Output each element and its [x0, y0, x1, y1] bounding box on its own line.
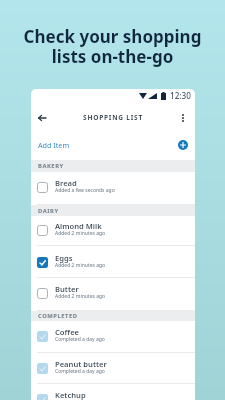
staticText: DAIRY [38, 207, 59, 215]
staticText: COMPLETED [38, 312, 78, 320]
staticText: Check your shopping lists on-the-go [0, 25, 225, 68]
staticText: Coffee [55, 327, 80, 337]
staticText: Added 2 minutes ago [55, 262, 106, 269]
button[interactable]: Bread [31, 172, 195, 205]
staticText: SHOPPING LIST [83, 113, 143, 122]
staticText: Completed a day ago [55, 368, 105, 375]
staticText: Added 2 minutes ago [55, 293, 106, 300]
button[interactable]: Peanut butter [31, 353, 195, 384]
button[interactable]: Almond Milk [31, 216, 195, 246]
staticText: Added a few seconds ago [55, 187, 115, 194]
staticText: Butter [55, 284, 79, 294]
staticText: 12:30 [170, 90, 191, 101]
button[interactable]: Coffee [31, 321, 195, 353]
staticText: Completed a day ago [55, 336, 105, 343]
staticText: Eggs [55, 253, 73, 263]
staticText: Added 2 minutes ago [55, 230, 106, 237]
staticText: Peanut butter [55, 359, 107, 369]
staticText: Ketchup [55, 390, 86, 400]
button[interactable]: Back [34, 110, 50, 126]
button[interactable]: Eggs [31, 246, 195, 278]
other: Add [178, 140, 188, 150]
staticText: Completed a day ago [55, 399, 105, 400]
staticText: BAKERY [38, 162, 64, 170]
staticText: Add Item [38, 140, 70, 150]
button[interactable]: More options [175, 110, 191, 126]
button[interactable]: Ketchup [31, 384, 195, 400]
staticText: Bread [55, 178, 77, 188]
button[interactable]: Butter [31, 278, 195, 311]
button[interactable]: Add Item [31, 129, 195, 160]
staticText: Almond Milk [55, 221, 102, 231]
